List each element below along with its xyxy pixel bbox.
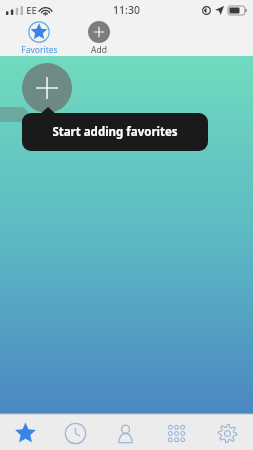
staticText: Add bbox=[91, 44, 107, 56]
button[interactable]: Start adding favorites bbox=[22, 113, 208, 151]
button[interactable]: Favorites bbox=[13, 21, 65, 56]
staticText: EE bbox=[26, 4, 37, 17]
button[interactable]: Settings bbox=[202, 417, 253, 450]
button[interactable]: Keypad bbox=[151, 417, 202, 450]
button[interactable]: Add bbox=[75, 21, 123, 56]
button[interactable]: Add favorite bbox=[22, 63, 72, 113]
staticText: Favorites bbox=[21, 44, 58, 56]
staticText: 11:30 bbox=[113, 3, 140, 17]
staticText: Start adding favorites bbox=[52, 124, 178, 140]
button[interactable]: Favorites bbox=[0, 417, 50, 450]
button[interactable]: Recents bbox=[50, 417, 100, 450]
button[interactable]: Contacts bbox=[100, 417, 151, 450]
